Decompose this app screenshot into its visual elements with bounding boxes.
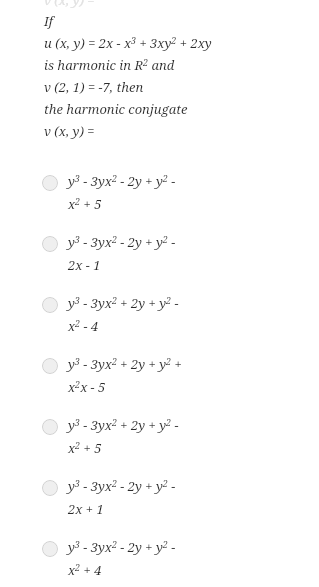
staticText: If [44, 12, 53, 30]
staticText: x2x − 5 [68, 378, 106, 396]
button[interactable] [0, 531, 319, 584]
staticText: y3 − 3yx2 + 2y + y2 + [68, 355, 182, 373]
staticText: v (x, y) = [44, 0, 95, 9]
staticText: y3 − 3yx2 + 2y + y2 − [68, 294, 179, 312]
staticText: y3 − 3yx2 − 2y + y2 − [68, 172, 176, 190]
staticText: v (x, y) = [44, 122, 95, 140]
staticText: y3 − 3yx2 − 2y + y2 − [68, 477, 176, 495]
staticText: 2x + 1 [68, 500, 104, 518]
staticText: x2 + 5 [68, 439, 102, 457]
button[interactable] [0, 287, 319, 340]
staticText: u (x, y) = 2x − x3 + 3xy2 + 2xy [44, 34, 212, 52]
button[interactable] [0, 226, 319, 279]
staticText: y3 − 3yx2 − 2y + y2 − [68, 233, 176, 251]
button[interactable] [0, 165, 319, 218]
button[interactable] [0, 470, 319, 523]
staticText: is harmonic in R2 and [44, 56, 175, 74]
button[interactable] [0, 409, 319, 462]
staticText: x2 − 4 [68, 317, 99, 335]
staticText: v (2, 1) = −7, then [44, 78, 144, 96]
staticText: x2 + 5 [68, 195, 102, 213]
staticText: 2x − 1 [68, 256, 101, 274]
staticText: y3 − 3yx2 − 2y + y2 − [68, 538, 176, 556]
staticText: the harmonic conjugate [44, 100, 188, 118]
staticText: x2 + 4 [68, 561, 102, 579]
staticText: y3 − 3yx2 + 2y + y2 − [68, 416, 179, 434]
button[interactable] [0, 348, 319, 401]
